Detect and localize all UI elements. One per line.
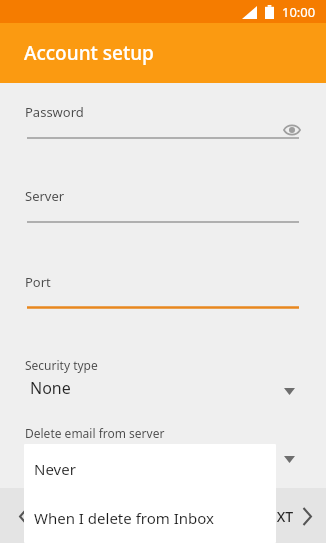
staticText: When I delete from Inbox [34,508,214,528]
button[interactable]: Port [0,273,326,335]
staticText: Security type [25,357,98,373]
button[interactable]: Security type [0,357,326,411]
staticText: Server [25,187,65,205]
button[interactable]: Previous [0,492,48,540]
staticText: Port [25,273,51,291]
button[interactable]: Never [24,444,276,493]
staticText: Account setup [24,40,154,66]
staticText: Password [25,103,84,121]
button[interactable]: Delete email from server [0,425,326,479]
button[interactable]: Show password [283,121,301,139]
button[interactable]: Server [0,187,326,249]
button[interactable]: When I delete from Inbox [24,493,276,543]
staticText: NEXT [258,507,294,526]
button[interactable]: NEXT [258,503,320,529]
staticText: Never [34,459,76,479]
staticText: None [30,377,71,399]
staticText: 10:00 [282,3,316,21]
staticText: Delete email from server [25,425,165,441]
button[interactable]: Password [0,103,326,165]
